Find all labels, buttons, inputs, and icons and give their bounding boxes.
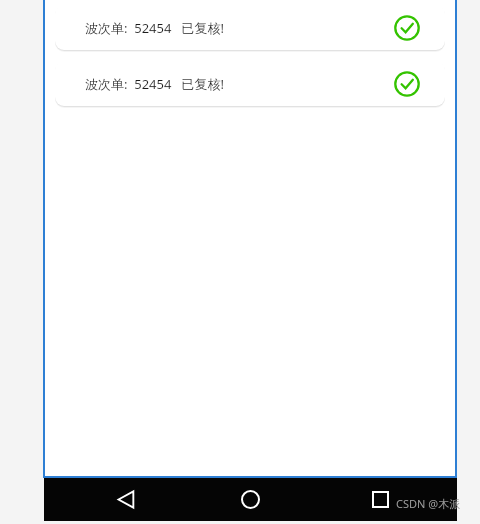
button[interactable]: Recent apps [347, 478, 413, 521]
button[interactable]: 波次单: 52454 已复核! [55, 61, 445, 106]
button[interactable]: Home [217, 478, 283, 521]
staticText: CSDN @木派 [396, 496, 461, 511]
button[interactable]: Back [93, 478, 159, 521]
staticText: 波次单: 52454 已复核! [85, 19, 225, 37]
button[interactable]: 波次单: 52454 已复核! [55, 5, 445, 50]
staticText: 波次单: 52454 已复核! [85, 75, 225, 93]
